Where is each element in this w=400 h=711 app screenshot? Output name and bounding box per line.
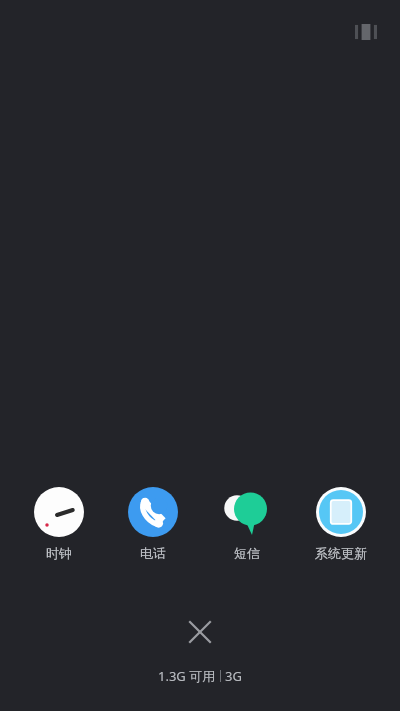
staticText: 短信: [234, 545, 260, 561]
staticText: 电话: [140, 545, 166, 561]
staticText: 1.3G 可用: [158, 667, 216, 685]
staticText: 3G: [225, 667, 242, 685]
staticText: 时钟: [46, 545, 72, 561]
button[interactable]: 电话: [108, 485, 198, 563]
button[interactable]: 短信: [202, 485, 292, 563]
button[interactable]: Close all: [178, 610, 222, 654]
staticText: 系统更新: [315, 545, 367, 561]
button[interactable]: 时钟: [14, 485, 104, 563]
button[interactable]: Recent apps: [350, 16, 382, 48]
button[interactable]: 系统更新: [296, 485, 386, 563]
